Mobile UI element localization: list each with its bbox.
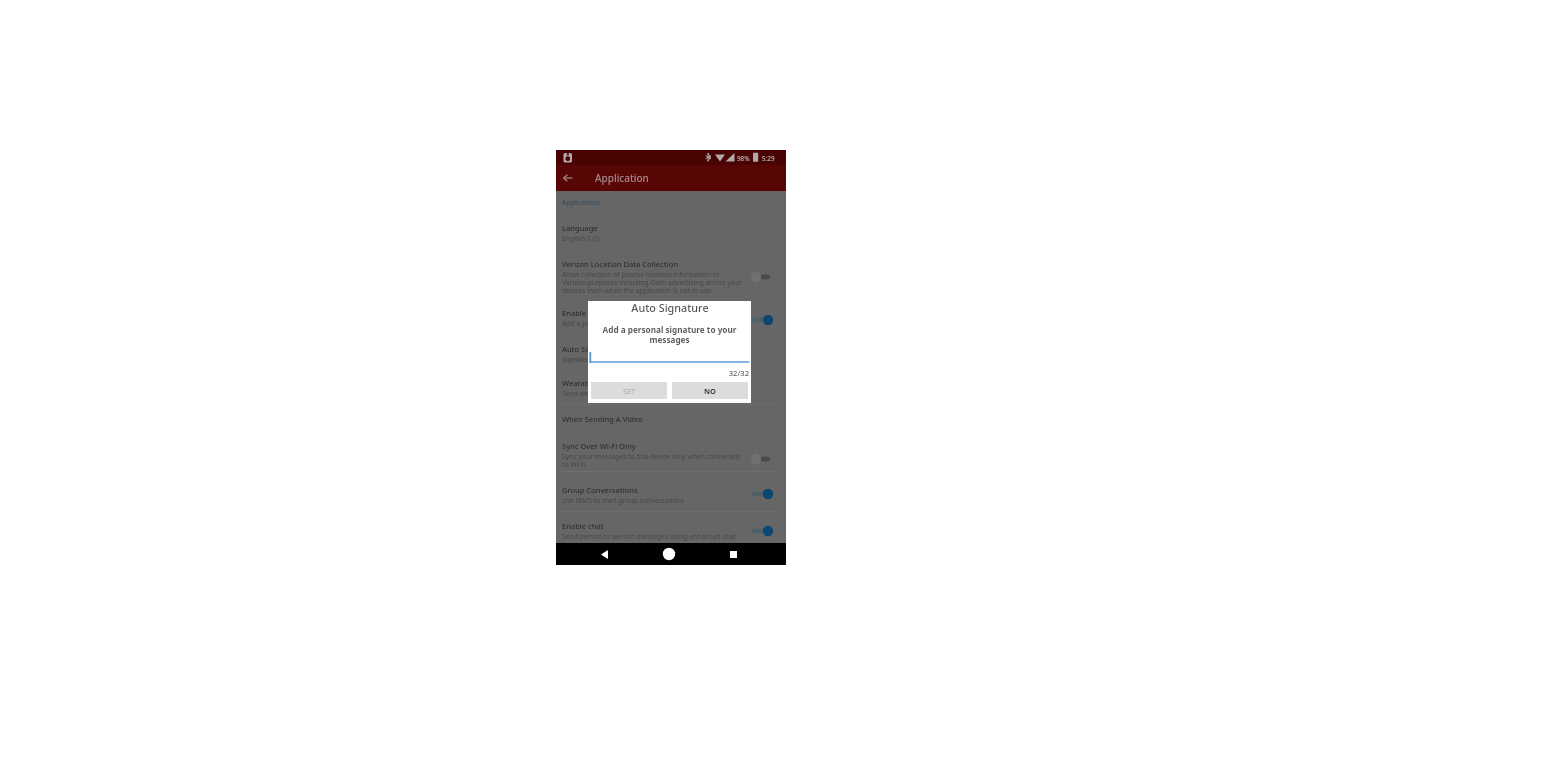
staticText: Add a personal signature to your message… (597, 324, 742, 345)
staticText: 98% (737, 154, 750, 163)
button[interactable]: When Sending A Video (562, 414, 643, 424)
button[interactable]: Auto Signature (556, 338, 786, 368)
button[interactable]: Sync Over Wi-Fi Only (556, 435, 786, 473)
button[interactable]: Verizon Location Data Collection (556, 253, 786, 299)
button[interactable]: Language (556, 217, 786, 247)
button[interactable]: Enable chat (556, 515, 786, 545)
button[interactable]: Home (656, 543, 682, 565)
button[interactable]: Applications (562, 198, 601, 207)
button[interactable]: NO (672, 382, 748, 399)
staticText: Enable chat (562, 521, 604, 531)
staticText: 5:29 (762, 154, 775, 163)
staticText: English (US) (562, 234, 762, 243)
staticText: Language (562, 223, 598, 233)
staticText: Add a personal signature to your message… (562, 319, 762, 328)
staticText: Sync your messages to this device only w… (562, 452, 744, 469)
staticText: 32/32 (588, 368, 749, 378)
staticText: Auto Signature (562, 344, 616, 354)
button[interactable]: Group Conversations (556, 479, 786, 509)
staticText: Verizon Location Data Collection (562, 259, 678, 269)
staticText: Enable Signature (562, 308, 623, 318)
button[interactable]: Recent apps (720, 543, 746, 565)
button[interactable]: Wearable (556, 372, 786, 402)
staticText: Application (595, 171, 649, 185)
staticText: Group Conversations (562, 485, 638, 495)
staticText: Sync Over Wi-Fi Only (562, 441, 636, 451)
button[interactable]: Off (750, 451, 774, 467)
staticText: Wearable (562, 378, 596, 388)
staticText: Send person to person messages using enh… (562, 532, 744, 549)
button[interactable]: On (750, 523, 774, 539)
staticText: Send wearable notifications (562, 389, 762, 398)
button[interactable]: SET (591, 382, 667, 399)
button[interactable]: Back (556, 166, 580, 190)
button[interactable]: On (750, 312, 774, 328)
button[interactable]: Enable Signature (556, 302, 786, 332)
button[interactable]: Back (591, 543, 617, 565)
staticText: When Sending A Video (562, 414, 643, 424)
button[interactable]: Off (750, 269, 774, 285)
staticText: SET (623, 386, 636, 396)
staticText: Use MMS to start group conversations (562, 496, 762, 505)
staticText: NO (704, 386, 717, 396)
staticText: Auto Signature (631, 300, 709, 315)
staticText: Allow collection of precise location inf… (562, 270, 744, 295)
staticText: Signature (562, 355, 762, 364)
button[interactable]: On (750, 486, 774, 502)
staticText: Applications (562, 198, 601, 207)
